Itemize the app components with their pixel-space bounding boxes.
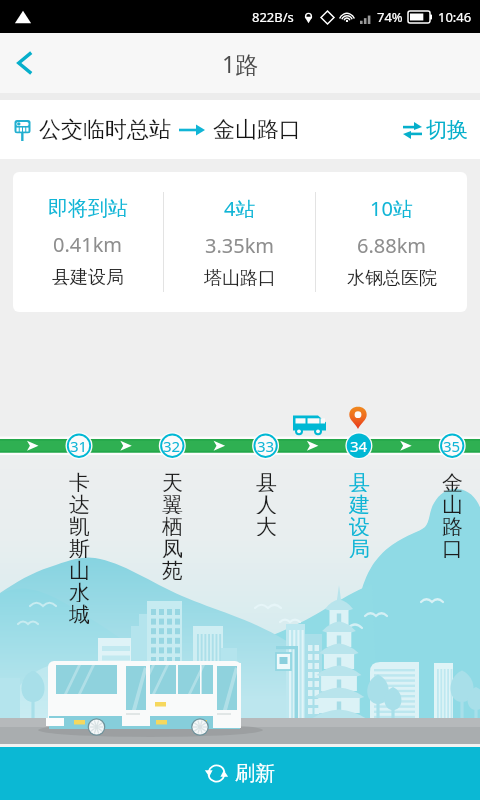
staticText: 建: [349, 492, 370, 514]
staticText: 34: [350, 436, 368, 456]
staticText: 35: [443, 436, 461, 456]
staticText: 县: [349, 470, 370, 492]
button[interactable]: 34: [345, 432, 373, 460]
button[interactable]: 刷新: [0, 747, 480, 800]
staticText: 31: [70, 436, 88, 456]
staticText: 3.35km: [205, 232, 275, 259]
staticText: 74%: [377, 8, 403, 26]
staticText: 33: [257, 436, 275, 456]
button[interactable]: 切换: [403, 117, 468, 143]
staticText: 0.41km: [53, 231, 123, 258]
staticText: 斯: [69, 536, 90, 558]
staticText: 设: [349, 514, 370, 536]
staticText: 翼: [162, 492, 183, 514]
staticText: 金山路口: [213, 116, 301, 144]
staticText: 塔山路口: [204, 267, 276, 290]
staticText: 水: [69, 580, 90, 602]
staticText: 县: [256, 470, 277, 492]
staticText: 城: [69, 602, 90, 624]
staticText: 苑: [162, 558, 183, 580]
staticText: 凯: [69, 514, 90, 536]
staticText: 达: [69, 492, 90, 514]
button[interactable]: 即将到站: [13, 172, 163, 312]
staticText: 金: [442, 470, 463, 492]
button[interactable]: 32: [158, 432, 186, 460]
staticText: 4站: [224, 195, 256, 222]
staticText: 10:46: [438, 8, 472, 26]
button[interactable]: 33: [252, 432, 280, 460]
staticText: 10站: [370, 195, 413, 222]
staticText: 凤: [162, 536, 183, 558]
staticText: 32: [163, 436, 181, 456]
staticText: 刷新: [235, 761, 275, 786]
button[interactable]: 4站: [164, 172, 315, 312]
staticText: 卡: [69, 470, 90, 492]
staticText: 切换: [426, 117, 468, 143]
staticText: 县建设局: [52, 266, 124, 289]
staticText: 人: [256, 492, 277, 514]
staticText: 口: [442, 536, 463, 558]
staticText: 山: [442, 492, 463, 514]
staticText: 路: [442, 514, 463, 536]
staticText: 局: [349, 536, 370, 558]
staticText: 公交临时总站: [39, 116, 171, 144]
staticText: 1路: [222, 48, 259, 79]
button[interactable]: 35: [438, 432, 466, 460]
staticText: 山: [69, 558, 90, 580]
staticText: 水钢总医院: [347, 267, 437, 290]
staticText: 即将到站: [48, 196, 128, 221]
staticText: 天: [162, 470, 183, 492]
button[interactable]: 31: [65, 432, 93, 460]
staticText: 栖: [162, 514, 183, 536]
button[interactable]: Back: [0, 38, 50, 88]
staticText: 822B/s: [252, 8, 294, 26]
staticText: 6.88km: [357, 232, 427, 259]
button[interactable]: 10站: [316, 172, 467, 312]
staticText: 大: [256, 514, 277, 536]
